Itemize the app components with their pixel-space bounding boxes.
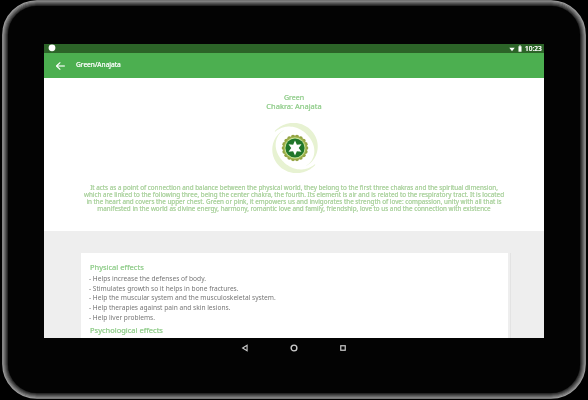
staticText: Green/Anajata xyxy=(76,60,121,69)
staticText: - Helps increase the defenses of body. xyxy=(89,274,207,283)
button[interactable]: Back xyxy=(230,338,260,358)
staticText: 10:23 xyxy=(525,44,542,53)
staticText: - Stimulates growth so it helps in bone … xyxy=(89,284,239,293)
button[interactable]: Navigate up xyxy=(46,53,74,78)
staticText: Chakra: Anajata xyxy=(44,101,544,111)
staticText: Green xyxy=(44,93,544,103)
staticText: - Help liver problems. xyxy=(89,313,156,322)
staticText: - Help therapies against pain and skin l… xyxy=(89,303,231,312)
button[interactable]: Home xyxy=(279,338,309,358)
staticText: Psychological effects xyxy=(90,325,163,335)
button[interactable]: Recent apps xyxy=(328,338,358,358)
staticText: - Help the muscular system and the muscu… xyxy=(89,293,276,302)
staticText: It acts as a point of connection and bal… xyxy=(82,183,506,213)
staticText: Physical effects xyxy=(90,262,144,272)
